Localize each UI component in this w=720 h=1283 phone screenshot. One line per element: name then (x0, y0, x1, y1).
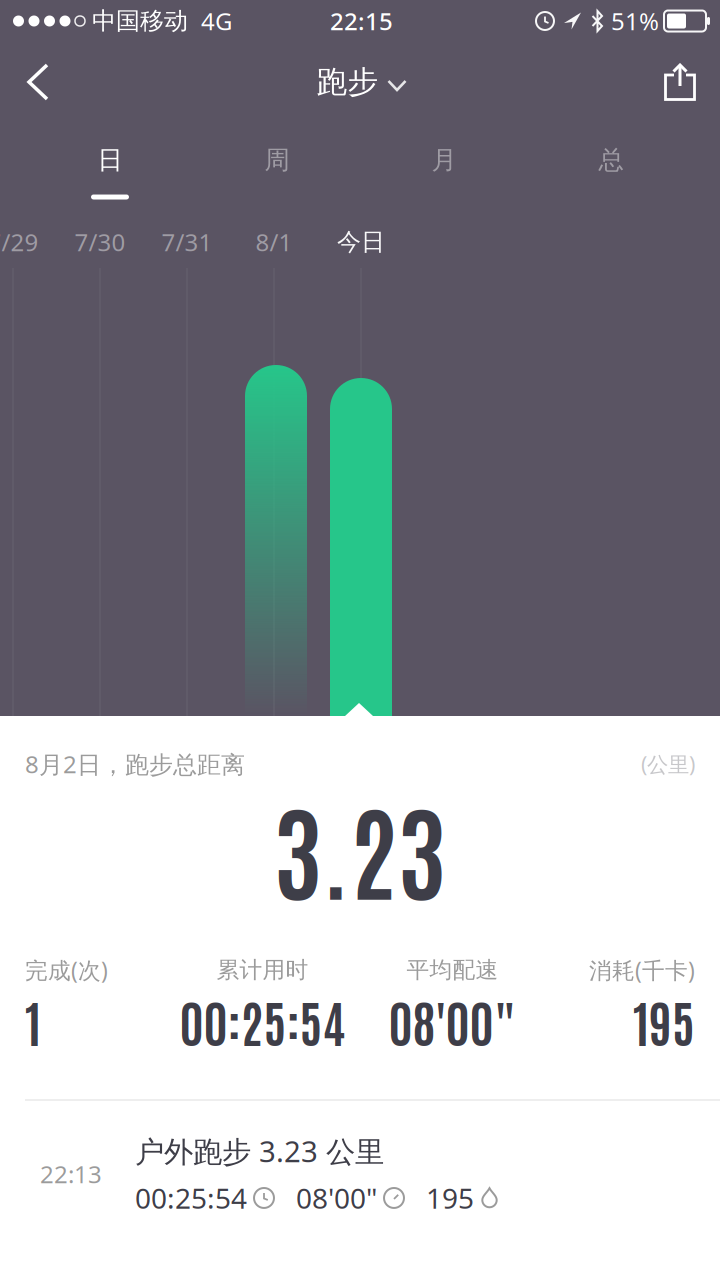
staticText: 累计用时 (216, 956, 308, 984)
staticText: 8月2日，跑步总距离 (25, 748, 245, 780)
staticText: 平均配速 (406, 956, 498, 984)
staticText: 195 (426, 1179, 474, 1217)
staticText: 1 (25, 989, 41, 1053)
staticText: 08'00" (388, 989, 516, 1053)
staticText: 22:15 (330, 5, 393, 37)
staticText: 3.23 (273, 780, 446, 914)
staticText: 7/31 (161, 226, 212, 258)
button[interactable]: 跑步 选择运动类型 (316, 63, 405, 101)
staticText: 08'00" (296, 1179, 377, 1217)
staticText: 总 (598, 144, 623, 175)
staticText: 跑步 (316, 63, 378, 101)
staticText: 消耗(千卡) (589, 955, 695, 985)
staticText: 中国移动 (92, 6, 188, 36)
button[interactable]: 月 (384, 132, 504, 188)
button[interactable]: 总 (551, 132, 671, 188)
button[interactable]: 周 (217, 132, 337, 188)
staticText: 7/29 (0, 226, 38, 258)
staticText: 7/30 (74, 226, 125, 258)
staticText: (公里) (641, 750, 695, 778)
staticText: 日 (97, 144, 122, 175)
staticText: 完成(次) (25, 955, 108, 985)
staticText: 195 (633, 989, 695, 1053)
staticText: 今日 (337, 227, 385, 257)
staticText: 8/1 (255, 226, 292, 258)
button[interactable]: Back (15, 51, 61, 113)
button[interactable]: Share (652, 52, 708, 112)
staticText: 00:25:54 (179, 989, 345, 1053)
staticText: 51% (611, 5, 659, 37)
button[interactable]: 22:13 (0, 1131, 720, 1216)
staticText: 00:25:54 (135, 1179, 247, 1217)
staticText: 22:13 (40, 1158, 102, 1190)
staticText: 周 (264, 144, 289, 175)
button[interactable]: 日 (50, 132, 170, 188)
staticText: 月 (431, 144, 456, 175)
staticText: 户外跑步 3.23 公里 (135, 1131, 384, 1170)
staticText: 4G (201, 5, 232, 37)
